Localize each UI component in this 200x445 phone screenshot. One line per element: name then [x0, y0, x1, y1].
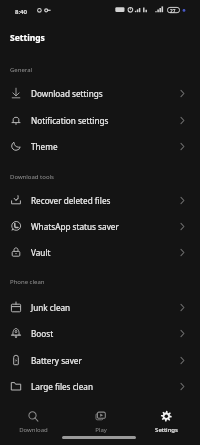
button[interactable]: Boost — [0, 320, 200, 346]
staticText: General — [10, 66, 33, 74]
staticText: 8:40 — [15, 8, 27, 16]
staticText: Download tools — [10, 173, 54, 181]
button[interactable]: Download tab — [0, 401, 67, 435]
button[interactable]: Junk clean — [0, 294, 200, 320]
staticText: Recover deleted files — [31, 195, 111, 206]
staticText: Play — [95, 426, 107, 434]
staticText: Large files clean — [31, 381, 93, 392]
button[interactable]: Play tab — [67, 401, 134, 435]
staticText: WhatsApp status saver — [31, 221, 119, 232]
staticText: Settings — [155, 426, 178, 434]
staticText: 27 — [170, 8, 176, 14]
button[interactable]: Large files clean — [0, 373, 200, 399]
button[interactable]: Theme — [0, 133, 200, 159]
button[interactable]: WhatsApp status saver — [0, 213, 200, 239]
staticText: Phone clean — [10, 278, 45, 286]
staticText: Download settings — [31, 88, 103, 99]
staticText: Vault — [31, 247, 51, 258]
button[interactable]: Settings tab — [133, 401, 200, 435]
button[interactable]: Download settings — [0, 80, 200, 106]
staticText: Junk clean — [31, 302, 71, 313]
button[interactable]: Battery saver — [0, 347, 200, 373]
button[interactable]: Notification settings — [0, 107, 200, 133]
button[interactable]: Vault — [0, 239, 200, 265]
staticText: Boost — [31, 328, 54, 339]
staticText: Settings — [10, 32, 45, 44]
button[interactable]: Recover deleted files — [0, 187, 200, 213]
staticText: Theme — [31, 141, 58, 152]
staticText: Download — [19, 426, 48, 434]
staticText: Battery saver — [31, 355, 82, 366]
staticText: Notification settings — [31, 115, 109, 126]
